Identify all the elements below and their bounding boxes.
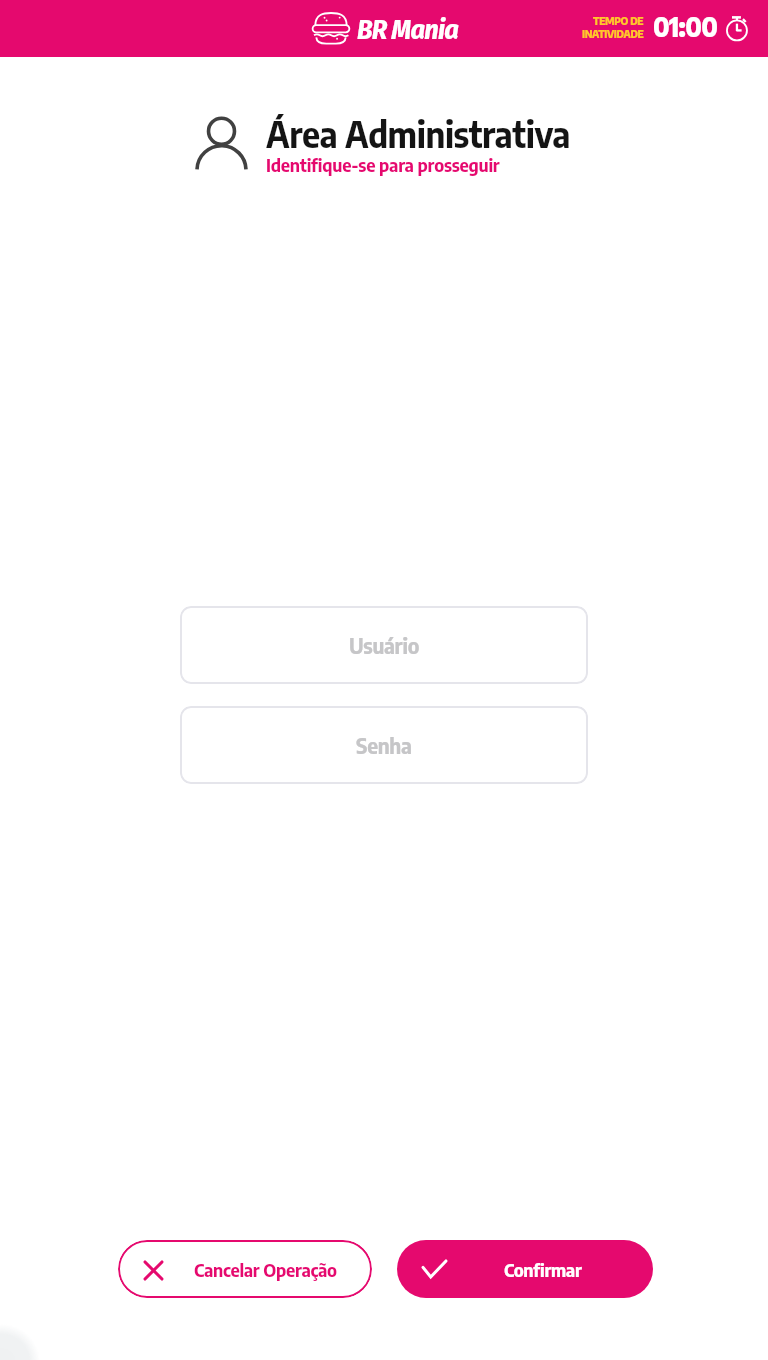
- staticText: 01:00: [653, 10, 718, 42]
- staticText: Senha: [356, 732, 412, 758]
- staticText: INATIVIDADE: [582, 27, 644, 40]
- staticText: Identifique-se para prosseguir: [266, 153, 500, 175]
- staticText: BR Mania: [357, 13, 459, 47]
- staticText: Cancelar Operação: [194, 1258, 337, 1280]
- other: Confirmar: [423, 1261, 446, 1277]
- other: Cancelar: [145, 1262, 162, 1279]
- other: BR Mania: [312, 12, 350, 44]
- staticText: Usuário: [349, 632, 420, 658]
- staticText: Área Administrativa: [266, 112, 570, 156]
- button[interactable]: Confirmar: [397, 1240, 653, 1298]
- staticText: Confirmar: [504, 1258, 582, 1280]
- staticText: TEMPO DE: [593, 14, 644, 27]
- button[interactable]: Usuário: [180, 606, 588, 684]
- other: Usuário: [197, 118, 246, 167]
- button[interactable]: Cancelar: [118, 1240, 372, 1298]
- button[interactable]: Senha: [180, 706, 588, 784]
- other: Tempo de inatividade: [726, 16, 748, 41]
